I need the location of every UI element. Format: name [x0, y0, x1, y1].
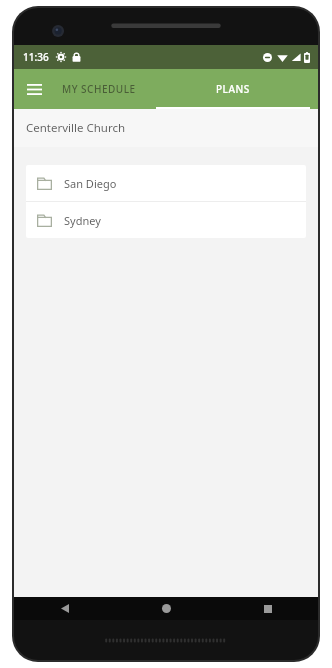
button[interactable]: MY SCHEDULE	[54, 69, 144, 109]
staticText: 11:36	[23, 50, 49, 64]
button[interactable]: San Diego	[26, 165, 306, 201]
button[interactable]: Back	[14, 597, 116, 620]
staticText: San Diego	[64, 176, 117, 191]
button[interactable]: Sydney	[26, 202, 306, 238]
staticText: Sydney	[64, 213, 101, 228]
button[interactable]: Recent apps	[217, 597, 318, 620]
button[interactable]: Open navigation drawer	[14, 69, 54, 109]
button[interactable]: Home	[116, 597, 217, 620]
button[interactable]: PLANS	[148, 69, 318, 109]
staticText: PLANS	[216, 82, 250, 96]
staticText: Centerville Church	[26, 120, 126, 136]
staticText: MY SCHEDULE	[62, 82, 136, 96]
